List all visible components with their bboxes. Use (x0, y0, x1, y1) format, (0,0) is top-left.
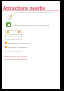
staticText: contact us for tours (4, 54, 27, 57)
staticText: and group bookings (4, 57, 28, 60)
staticText: Attractions nearby (3, 5, 46, 11)
button[interactable] (5, 30, 22, 40)
staticText: opening times (5, 49, 22, 52)
staticText: read more about the local area (13, 23, 50, 26)
button[interactable]: botanic gardens (5, 45, 28, 48)
button[interactable]: read more about the local area (2, 22, 60, 27)
staticText: botanic gardens (8, 45, 28, 48)
button[interactable]: museum of history (5, 41, 31, 44)
staticText: museum of history (8, 41, 31, 44)
staticText: published on august 21 2019 by editor (14, 11, 54, 14)
